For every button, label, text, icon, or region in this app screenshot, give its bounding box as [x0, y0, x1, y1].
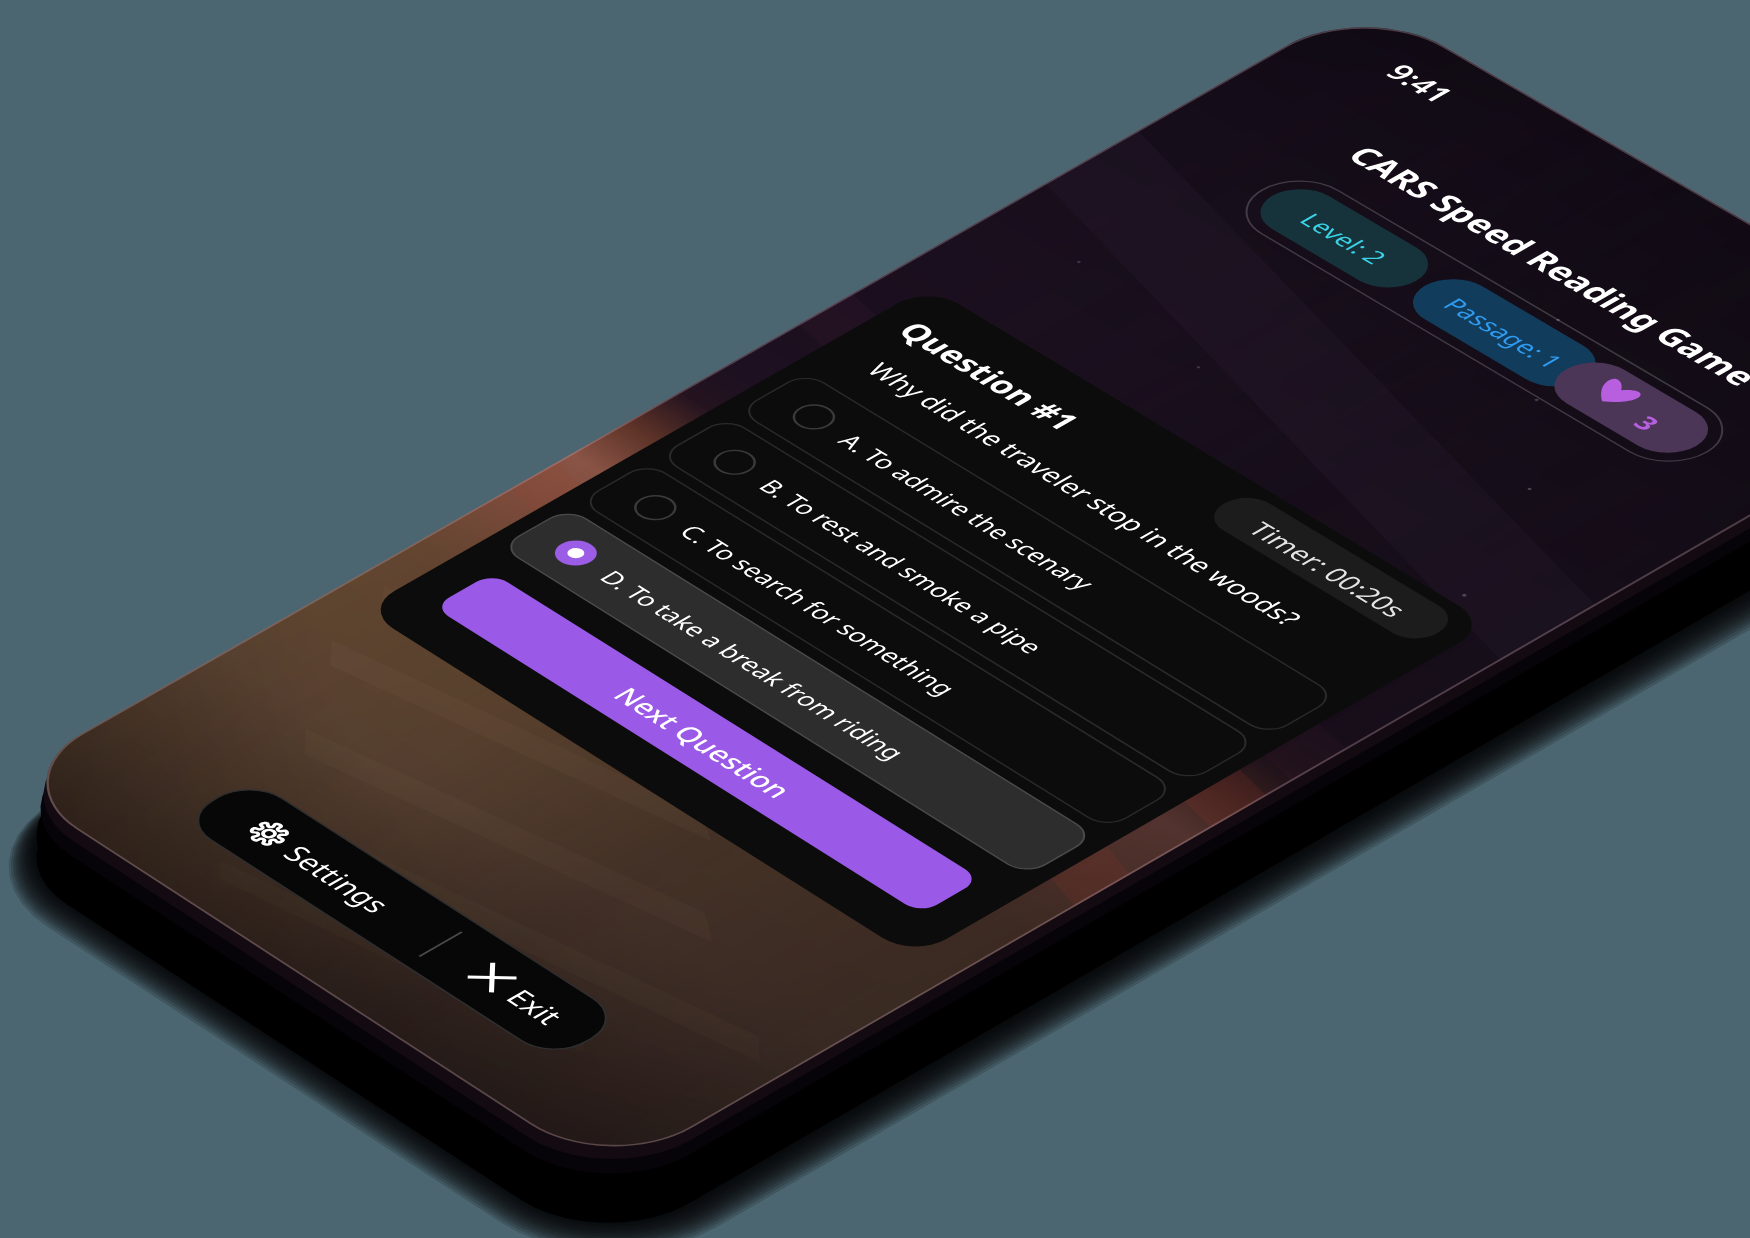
button[interactable]: Exit — [362, 901, 622, 1064]
button[interactable]: Settings — [177, 781, 433, 941]
button[interactable]: B. To rest and smoke a pipe — [658, 418, 1255, 783]
button[interactable]: A. To admire the scenary — [737, 373, 1336, 737]
button[interactable]: C. To search for something — [579, 463, 1175, 829]
button[interactable]: Passage: 1 — [1396, 269, 1613, 396]
button[interactable]: Level: 2 — [1244, 179, 1445, 297]
button[interactable]: Lives remaining: 3 — [1537, 353, 1725, 463]
button[interactable]: Next Question — [433, 573, 981, 914]
button[interactable]: D. To take a break from riding — [499, 509, 1094, 877]
